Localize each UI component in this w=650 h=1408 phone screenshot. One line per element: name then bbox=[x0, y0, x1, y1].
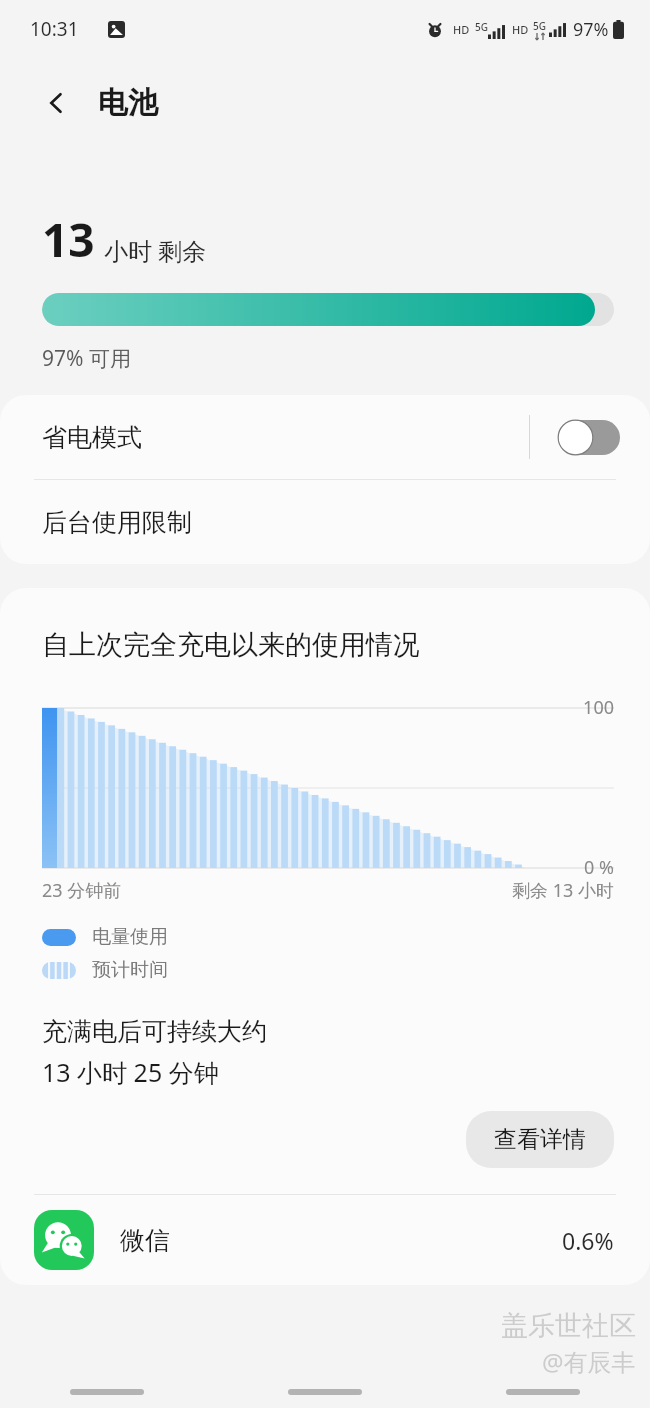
button[interactable]: Recents bbox=[70, 1389, 144, 1395]
button[interactable]: 省电模式 bbox=[0, 395, 650, 479]
staticText: 自上次完全充电以来的使用情况 bbox=[42, 628, 420, 662]
button[interactable]: 微信 bbox=[0, 1195, 650, 1285]
staticText: 盖乐世社区 bbox=[501, 1309, 636, 1343]
staticText: 省电模式 bbox=[42, 422, 529, 453]
staticText: 97% 可用 bbox=[42, 344, 131, 373]
button[interactable]: Back bbox=[506, 1389, 580, 1395]
button[interactable]: Home bbox=[288, 1389, 362, 1395]
staticText: 微信 bbox=[120, 1225, 562, 1256]
staticText: 100 bbox=[583, 695, 614, 720]
staticText: @有辰丰 bbox=[542, 1345, 636, 1378]
staticText: 查看详情 bbox=[494, 1125, 586, 1154]
button[interactable]: 后台使用限制 bbox=[0, 480, 650, 564]
staticText: 10:31 bbox=[30, 16, 79, 42]
staticText: 0 % bbox=[584, 855, 614, 880]
staticText: 5G bbox=[475, 20, 488, 34]
staticText: 电量使用 bbox=[92, 925, 168, 949]
staticText: 充满电后可持续大约 bbox=[42, 1016, 267, 1047]
staticText: 0.6% bbox=[562, 1225, 614, 1256]
button[interactable]: Back bbox=[34, 80, 80, 126]
staticText: 小时 剩余 bbox=[104, 234, 207, 267]
button[interactable]: 查看详情 bbox=[466, 1111, 614, 1168]
staticText: 预计时间 bbox=[92, 958, 168, 982]
staticText: 剩余 13 小时 bbox=[512, 878, 614, 903]
staticText: HD bbox=[453, 22, 470, 37]
staticText: 23 分钟前 bbox=[42, 878, 122, 903]
staticText: 97% bbox=[573, 17, 609, 42]
staticText: 电池 bbox=[98, 84, 158, 122]
staticText: 13 bbox=[42, 208, 95, 271]
staticText: 13 小时 25 分钟 bbox=[42, 1055, 219, 1089]
staticText: HD bbox=[512, 22, 529, 37]
button[interactable]: 省电模式 开关 bbox=[552, 414, 626, 461]
staticText: 后台使用限制 bbox=[42, 507, 192, 538]
staticText: 5G bbox=[533, 19, 546, 33]
